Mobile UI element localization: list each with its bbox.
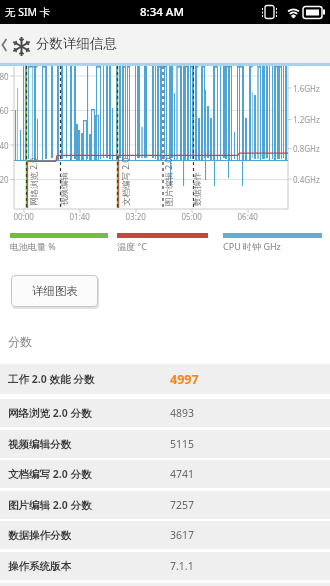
staticText: 视频编辑分数: [8, 438, 71, 451]
staticText: 文档编写 2.0 分数: [8, 467, 92, 481]
staticText: 分数: [8, 334, 32, 349]
staticText: 操作系统版本: [8, 560, 71, 573]
button[interactable]: 操作系统版本: [0, 552, 330, 580]
staticText: 网络浏览 2.0 分数: [8, 406, 92, 420]
staticText: CPU 时钟 GHz: [223, 240, 281, 252]
staticText: 7257: [170, 498, 195, 512]
staticText: 温度 °C: [117, 240, 147, 252]
staticText: 4741: [170, 467, 195, 481]
button[interactable]: 详细图表: [11, 275, 98, 307]
staticText: 7.1.1: [170, 559, 194, 573]
button[interactable]: 图片编辑 2.0 分数: [0, 491, 330, 519]
staticText: 数据操作分数: [8, 529, 71, 542]
button[interactable]: 工作 2.0 效能 分数: [0, 364, 330, 394]
button[interactable]: 分数详细信息: [0, 24, 330, 63]
button[interactable]: 数据操作分数: [0, 521, 330, 549]
staticText: 3617: [170, 528, 195, 542]
staticText: 图片编辑 2.0 分数: [8, 498, 92, 512]
button[interactable]: 文档编写 2.0 分数: [0, 460, 330, 488]
staticText: 5115: [170, 437, 195, 451]
staticText: 工作 2.0 效能 分数: [8, 372, 95, 386]
button[interactable]: 网络浏览 2.0 分数: [0, 399, 330, 427]
staticText: 电池电量 %: [10, 240, 56, 252]
button[interactable]: 视频编辑分数: [0, 430, 330, 458]
staticText: 4997: [170, 371, 199, 388]
staticText: 无 SIM 卡: [5, 5, 51, 19]
staticText: 4893: [170, 406, 195, 420]
staticText: 8:34 AM: [140, 4, 184, 20]
staticText: 详细图表: [32, 284, 78, 298]
staticText: 分数详细信息: [36, 35, 117, 52]
